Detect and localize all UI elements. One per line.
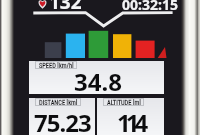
staticText: SPEED [km/h] <box>39 62 74 69</box>
staticText: 00:32:15 <box>122 0 178 14</box>
staticText: 114 <box>117 106 144 135</box>
staticText: 132 <box>49 0 82 15</box>
staticText: DISTANCE [km] <box>39 99 78 106</box>
staticText: 75.23 <box>34 106 91 135</box>
staticText: ALTITUDE [m] <box>107 99 141 106</box>
button[interactable]: SPEED [km/h] <box>29 61 164 94</box>
button[interactable]: DISTANCE [km] <box>29 98 95 135</box>
button[interactable]: ALTITUDE [m] <box>97 98 164 135</box>
other: Heart rate <box>37 0 48 9</box>
staticText: 34.8 <box>74 65 122 98</box>
